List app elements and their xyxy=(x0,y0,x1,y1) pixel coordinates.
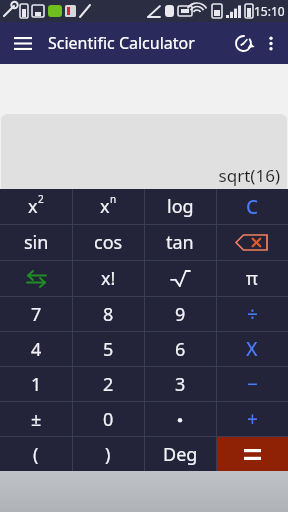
staticText: Deg xyxy=(163,442,198,467)
button[interactable]: tan xyxy=(144,225,216,260)
staticText: + xyxy=(247,406,258,432)
button[interactable]: x! xyxy=(72,261,144,296)
staticText: Scientific Calculator xyxy=(48,32,195,54)
button[interactable]: 7 xyxy=(0,297,72,331)
staticText: n xyxy=(110,192,117,206)
button[interactable]: sin xyxy=(0,225,72,260)
staticText: 3 xyxy=(175,372,186,397)
staticText: 2 xyxy=(103,372,114,397)
button[interactable]: ÷ xyxy=(216,297,288,331)
staticText: 15:10 xyxy=(254,3,285,19)
button[interactable]: cos xyxy=(72,225,144,260)
staticText: 6 xyxy=(175,337,186,362)
staticText: 1 xyxy=(31,372,42,397)
staticText: x! xyxy=(101,266,116,291)
staticText: 7 xyxy=(31,302,42,327)
button[interactable]: 2 xyxy=(72,367,144,401)
staticText: log xyxy=(167,194,194,219)
staticText: x xyxy=(28,194,38,219)
staticText: cos xyxy=(94,230,123,255)
staticText: X xyxy=(246,336,258,362)
staticText: 2 xyxy=(38,192,44,206)
button[interactable]: 8 xyxy=(72,297,144,331)
button[interactable]: 6 xyxy=(144,332,216,366)
staticText: − xyxy=(247,371,258,397)
staticText: ( xyxy=(33,442,39,467)
button[interactable]: π xyxy=(216,261,288,296)
button[interactable]: Backspace xyxy=(216,225,288,260)
staticText: C xyxy=(246,194,259,220)
staticText: 9 xyxy=(175,302,186,327)
button[interactable]: Open navigation menu xyxy=(8,28,38,58)
staticText: sin xyxy=(24,230,49,255)
button[interactable]: C xyxy=(216,189,288,224)
staticText: 5 xyxy=(103,337,114,362)
button[interactable]: − xyxy=(216,367,288,401)
button[interactable]: ( xyxy=(0,437,72,471)
button[interactable]: + xyxy=(216,402,288,436)
button[interactable]: 0 xyxy=(72,402,144,436)
staticText: ) xyxy=(105,442,111,467)
button[interactable]: 5 xyxy=(72,332,144,366)
button[interactable]: ± xyxy=(0,402,72,436)
staticText: x xyxy=(100,194,110,219)
button[interactable]: x xyxy=(72,189,144,224)
staticText: 4 xyxy=(31,337,42,362)
button[interactable]: 9 xyxy=(144,297,216,331)
staticText: tan xyxy=(166,230,194,255)
staticText: 0 xyxy=(103,407,114,432)
button[interactable]: ) xyxy=(72,437,144,471)
button[interactable]: X xyxy=(216,332,288,366)
button[interactable]: 1 xyxy=(0,367,72,401)
button[interactable]: 4 xyxy=(0,332,72,366)
button[interactable]: log xyxy=(144,189,216,224)
button[interactable]: Deg xyxy=(144,437,216,471)
staticText: sqrt(16) xyxy=(218,164,280,187)
button[interactable] xyxy=(216,437,288,471)
staticText: 8 xyxy=(103,302,114,327)
button[interactable]: Square root xyxy=(144,261,216,296)
button[interactable]: 3 xyxy=(144,367,216,401)
staticText: ÷ xyxy=(247,301,258,327)
staticText: π xyxy=(246,266,258,291)
staticText: ± xyxy=(31,407,42,432)
button[interactable]: x xyxy=(0,189,72,224)
button[interactable]: More options xyxy=(258,30,284,56)
button[interactable]: Swap xyxy=(0,261,72,296)
button[interactable] xyxy=(144,402,216,436)
button[interactable]: History xyxy=(228,28,258,58)
